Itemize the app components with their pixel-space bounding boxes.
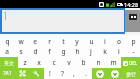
button[interactable]: l	[112, 46, 126, 57]
button[interactable]: n	[91, 57, 106, 68]
button[interactable]: s	[14, 46, 28, 57]
staticText: a	[5, 47, 9, 56]
staticText: q	[5, 37, 10, 46]
button[interactable]: 英文	[0, 57, 18, 68]
button[interactable]: d	[28, 46, 42, 57]
staticText: ?	[61, 69, 64, 78]
staticText: 英文	[4, 60, 14, 66]
button[interactable]: h	[70, 46, 84, 57]
button[interactable]: u	[84, 36, 98, 46]
button[interactable]: k	[98, 46, 112, 57]
button[interactable]: c	[46, 57, 61, 68]
button[interactable]: 换行	[122, 68, 140, 79]
button[interactable]: e	[28, 36, 42, 46]
staticText: z	[23, 58, 27, 67]
button[interactable]: m	[106, 57, 121, 68]
button[interactable]: a	[0, 46, 14, 57]
button[interactable]: Emoji	[15, 68, 29, 79]
staticText: j	[90, 47, 92, 56]
staticText: w	[18, 37, 24, 46]
button[interactable]: Next	[107, 68, 122, 79]
button[interactable]: f	[42, 46, 56, 57]
staticText: x	[37, 58, 41, 67]
button[interactable]: Previous	[92, 68, 107, 79]
staticText: s	[19, 47, 23, 56]
button[interactable]: o	[112, 36, 126, 46]
staticText: ?A1	[3, 70, 12, 77]
button[interactable]: y	[70, 36, 84, 46]
staticText: .	[85, 69, 87, 78]
staticText: v	[67, 58, 71, 67]
button[interactable]: i	[98, 36, 112, 46]
staticText: f	[48, 47, 51, 56]
staticText: 14:28	[124, 1, 139, 8]
staticText: p	[131, 37, 136, 46]
staticText: l	[118, 47, 120, 56]
button[interactable]: ?A1	[0, 68, 15, 79]
button[interactable]: b	[76, 57, 91, 68]
button[interactable]: w	[14, 36, 28, 46]
button[interactable]: x	[32, 57, 46, 68]
staticText: DEL	[129, 60, 138, 66]
staticText: k	[103, 47, 107, 56]
staticText: c	[52, 58, 56, 67]
staticText: e	[33, 37, 37, 46]
staticText: !	[49, 69, 51, 78]
button[interactable]	[2, 10, 124, 32]
button[interactable]: v	[61, 57, 76, 68]
button[interactable]: z	[18, 57, 32, 68]
staticText: -	[132, 47, 135, 56]
button[interactable]: Insert image	[125, 10, 140, 32]
staticText: u	[89, 37, 94, 46]
button[interactable]: Delete	[121, 57, 140, 68]
button[interactable]: q	[0, 36, 14, 46]
button[interactable]: g	[56, 46, 70, 57]
staticText: b	[81, 58, 86, 67]
button[interactable]: r	[42, 36, 56, 46]
staticText: m	[110, 58, 117, 67]
button[interactable]: -	[126, 46, 140, 57]
staticText: o	[117, 37, 121, 46]
button[interactable]: ,	[68, 68, 80, 79]
staticText: y	[75, 37, 79, 46]
button[interactable]: p	[126, 36, 140, 46]
button[interactable]: .	[80, 68, 92, 79]
staticText: ,	[73, 69, 75, 78]
button[interactable]: !	[44, 68, 56, 79]
staticText: 换行	[126, 71, 136, 77]
button[interactable]: Settings	[29, 68, 44, 79]
staticText: g	[61, 47, 66, 56]
staticText: r	[48, 37, 51, 46]
staticText: d	[33, 47, 38, 56]
staticText: h	[75, 47, 80, 56]
button[interactable]: t	[56, 36, 70, 46]
button[interactable]: ?	[56, 68, 68, 79]
button[interactable]: j	[84, 46, 98, 57]
staticText: i	[104, 37, 106, 46]
staticText: t	[62, 37, 65, 46]
staticText: n	[96, 58, 101, 67]
